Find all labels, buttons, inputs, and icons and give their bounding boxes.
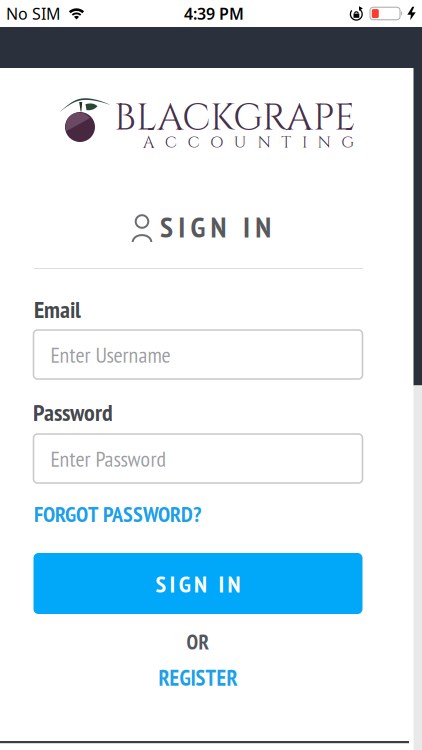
staticText: T — [281, 132, 291, 154]
staticText: O — [210, 132, 223, 154]
staticText: 4:39 PM — [184, 3, 244, 24]
staticText: G — [190, 207, 205, 246]
staticText: U — [234, 132, 247, 154]
button[interactable]: FORGOT PASSWORD? — [34, 499, 201, 528]
staticText: No SIM — [6, 3, 61, 24]
staticText: N — [211, 207, 227, 246]
staticText: FORGOT PASSWORD? — [34, 499, 201, 528]
staticText: N — [255, 207, 271, 246]
staticText: Email — [34, 293, 81, 325]
staticText: I — [218, 568, 224, 599]
staticText: G — [179, 568, 191, 599]
staticText: I — [170, 568, 176, 599]
staticText: I — [178, 207, 185, 246]
button[interactable]: REGISTER — [158, 663, 237, 692]
staticText: I — [243, 207, 250, 246]
staticText: N — [257, 132, 270, 154]
staticText: A — [143, 132, 154, 154]
staticText: I — [302, 132, 307, 154]
staticText: BLACKGRAPE — [114, 93, 356, 143]
staticText: C — [165, 132, 177, 154]
button[interactable]: Enter Password — [33, 434, 362, 483]
staticText: Password — [33, 396, 113, 428]
staticText: REGISTER — [158, 663, 237, 692]
button[interactable]: S — [33, 553, 362, 614]
staticText: Enter Username — [50, 340, 170, 369]
staticText: N — [194, 568, 207, 599]
staticText: N — [228, 568, 241, 599]
staticText: Enter Password — [50, 444, 166, 473]
staticText: OR — [186, 628, 209, 655]
staticText: C — [187, 132, 199, 154]
staticText: N — [318, 132, 331, 154]
staticText: S — [155, 568, 166, 599]
staticText: G — [341, 132, 354, 154]
staticText: S — [160, 207, 173, 246]
button[interactable]: Enter Username — [33, 330, 362, 379]
